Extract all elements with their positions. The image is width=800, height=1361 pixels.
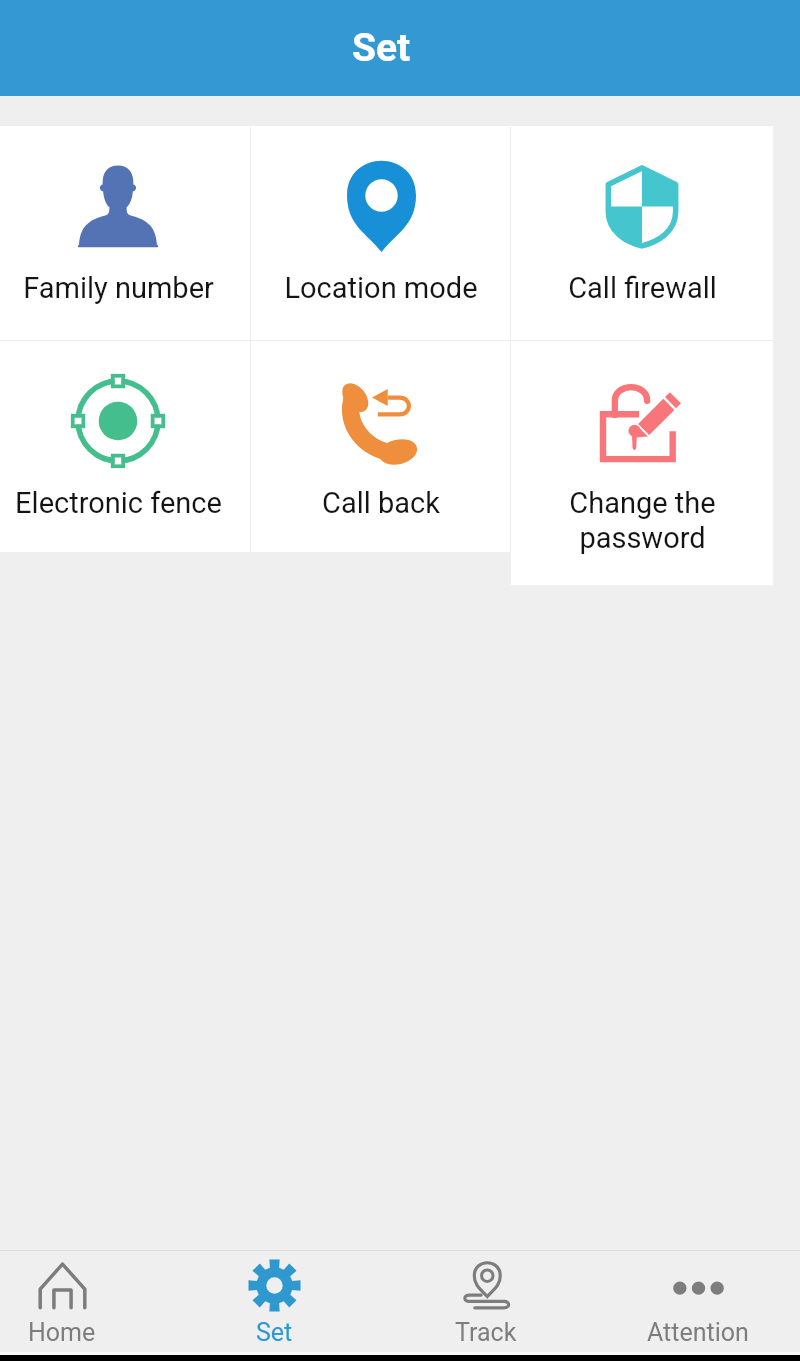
staticText: Set [256,1318,293,1347]
button[interactable]: Call firewall [511,126,773,340]
staticText: Electronic fence [15,486,222,520]
button[interactable]: Track [380,1251,592,1352]
staticText: Attention [647,1318,749,1347]
staticText: Call back [322,486,440,520]
button[interactable]: Location mode [251,126,511,340]
button[interactable]: Electronic fence [0,341,251,552]
button[interactable]: Attention [592,1251,800,1352]
button[interactable]: Set [168,1251,380,1352]
button[interactable]: Change the password [511,341,773,585]
staticText: Track [455,1318,517,1347]
staticText: Family number [23,271,214,305]
staticText: Home [28,1318,96,1347]
button[interactable]: Call back [251,341,511,552]
staticText: Location mode [284,271,478,305]
staticText: Change the password [569,486,716,555]
button[interactable]: Family number [0,126,251,340]
staticText: Set [352,25,411,71]
staticText: Call firewall [568,271,717,305]
button[interactable]: Home [0,1251,168,1352]
